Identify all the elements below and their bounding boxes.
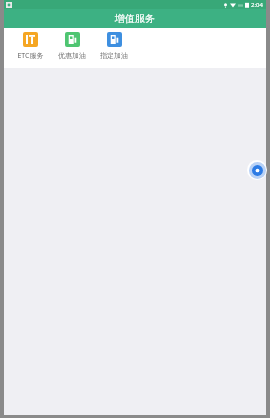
staticText: 增值服务 xyxy=(115,12,155,25)
staticText: ETC服务 xyxy=(17,51,44,61)
button[interactable]: ETC服务 xyxy=(9,32,51,61)
button[interactable]: Customer service xyxy=(247,160,267,180)
button[interactable]: 优惠加油 xyxy=(51,32,93,60)
staticText: 指定加油 xyxy=(100,51,128,60)
staticText: 优惠加油 xyxy=(58,51,86,60)
staticText: 2:04 xyxy=(251,1,263,9)
button[interactable]: 指定加油 xyxy=(93,32,135,60)
